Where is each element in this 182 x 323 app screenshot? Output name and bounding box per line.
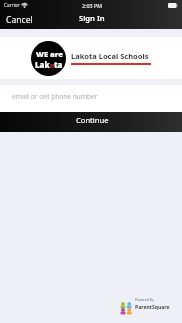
staticText: Lak <box>35 60 50 71</box>
staticText: 2:03 PM <box>82 2 103 9</box>
button[interactable]: Cancel <box>0 14 39 29</box>
staticText: email or cell phone number <box>12 92 98 101</box>
staticText: Powered By <box>135 297 154 302</box>
staticText: Sign In <box>79 13 105 23</box>
staticText: Carrier <box>4 2 20 9</box>
staticText: Lakota Local Schools <box>71 51 149 61</box>
button[interactable]: Continue <box>0 112 182 132</box>
staticText: WE are <box>36 49 63 59</box>
staticText: ParentSquare <box>135 304 170 311</box>
staticText: ta <box>54 60 63 71</box>
button[interactable]: Powered by ParentSquare <box>120 299 170 313</box>
staticText: Cancel <box>6 14 33 25</box>
button[interactable]: email or cell phone number <box>0 85 182 113</box>
staticText: Continue <box>76 115 109 125</box>
